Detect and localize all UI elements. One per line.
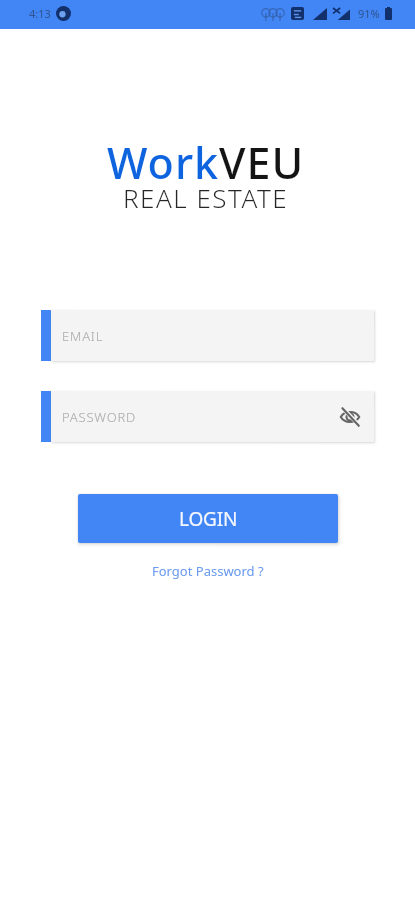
button[interactable]: EMAIL [41, 310, 374, 361]
staticText: 91% [358, 6, 380, 21]
staticText: 4:13 [29, 6, 51, 21]
button[interactable]: Forgot Password ? [144, 559, 272, 583]
button[interactable]: LOGIN [78, 494, 338, 543]
staticText: Forgot Password ? [152, 562, 264, 580]
staticText: PASSWORD [62, 408, 137, 426]
button[interactable]: Show password [337, 404, 363, 430]
staticText: REAL ESTATE [123, 180, 289, 215]
staticText: WorkVEU [107, 133, 305, 192]
staticText: EMAIL [62, 327, 104, 345]
button[interactable]: PASSWORD [41, 391, 374, 442]
staticText: LOGIN [179, 506, 238, 532]
